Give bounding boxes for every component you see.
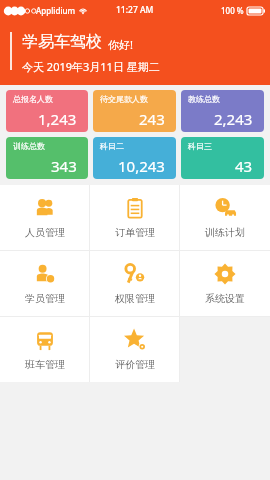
- staticText: 待交尾款人数: [100, 94, 148, 104]
- staticText: 343: [51, 156, 77, 176]
- button[interactable]: 训练总数: [6, 137, 88, 179]
- staticText: 1,243: [38, 109, 77, 129]
- button[interactable]: 学员管理: [0, 251, 90, 316]
- staticText: 学员管理: [25, 292, 65, 305]
- staticText: 教练总数: [188, 94, 220, 104]
- button[interactable]: 订单管理: [90, 185, 180, 250]
- staticText: 今天 2019年3月11日 星期二: [22, 59, 160, 74]
- button[interactable]: 科目三: [181, 137, 264, 179]
- staticText: 训练总数: [13, 141, 45, 151]
- staticText: 班车管理: [25, 358, 65, 371]
- staticText: 评价管理: [115, 358, 155, 371]
- staticText: 学易车驾校: [22, 32, 102, 52]
- staticText: 243: [139, 109, 165, 129]
- staticText: 训练计划: [205, 226, 245, 239]
- button[interactable]: 人员管理: [0, 185, 90, 250]
- staticText: 科目二: [100, 141, 124, 151]
- button[interactable]: 总报名人数: [6, 90, 88, 132]
- staticText: 43: [235, 156, 253, 176]
- staticText: 2,243: [214, 109, 253, 129]
- staticText: 系统设置: [205, 292, 245, 305]
- staticText: 10,243: [118, 156, 165, 176]
- button[interactable]: 权限管理: [90, 251, 180, 316]
- staticText: 100 %: [221, 5, 244, 16]
- staticText: Applidium: [36, 5, 76, 16]
- staticText: 总报名人数: [13, 94, 53, 104]
- button[interactable]: 系统设置: [180, 251, 270, 316]
- button[interactable]: 科目二: [93, 137, 176, 179]
- button[interactable]: 评价管理: [90, 317, 180, 382]
- button[interactable]: 班车管理: [0, 317, 90, 382]
- button[interactable]: 待交尾款人数: [93, 90, 176, 132]
- button[interactable]: 教练总数: [181, 90, 264, 132]
- staticText: 人员管理: [25, 226, 65, 239]
- staticText: 11:27 AM: [116, 4, 154, 16]
- staticText: 订单管理: [115, 226, 155, 239]
- staticText: 科目三: [188, 141, 212, 151]
- staticText: 权限管理: [115, 292, 155, 305]
- button[interactable]: 训练计划: [180, 185, 270, 250]
- staticText: 你好!: [108, 37, 133, 52]
